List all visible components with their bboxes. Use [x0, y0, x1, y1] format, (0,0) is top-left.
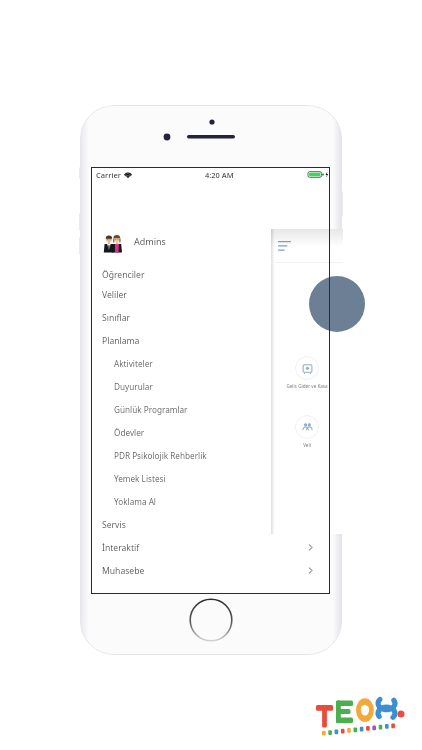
button[interactable]: İnteraktif — [91, 536, 330, 559]
other: Home — [189, 598, 233, 642]
button[interactable]: Duyurular — [91, 375, 330, 398]
staticText: 4:20 AM — [205, 170, 234, 180]
staticText: PDR Psikolojik Rehberlik — [114, 450, 207, 461]
button[interactable]: Gelir, Gider ve Kasa — [271, 356, 343, 389]
staticText: Admins — [134, 235, 166, 247]
button[interactable]: Admins — [91, 228, 330, 254]
staticText: Duyurular — [114, 381, 153, 392]
button[interactable]: Aktiviteler — [91, 352, 330, 375]
staticText: Aktiviteler — [114, 358, 153, 369]
staticText: Sınıflar — [102, 312, 131, 324]
staticText: Carrier — [96, 170, 121, 180]
button[interactable]: Muhasebe — [91, 559, 330, 582]
button[interactable]: Servis — [91, 513, 330, 536]
staticText: Yoklama Al — [114, 496, 156, 507]
button[interactable]: Sınıflar — [91, 306, 330, 329]
staticText: Muhasebe — [102, 565, 145, 577]
button[interactable]: Menu — [278, 241, 291, 251]
button[interactable]: PDR Psikolojik Rehberlik — [91, 444, 330, 467]
staticText: Planlama — [102, 335, 140, 347]
button[interactable]: Öğrenciler — [91, 266, 330, 283]
button[interactable]: Ödevler — [91, 421, 330, 444]
staticText: Gelir, Gider ve Kasa — [271, 383, 343, 389]
button[interactable]: TEOS Android and iOS — [310, 686, 410, 742]
button[interactable]: Günlük Programlar — [91, 398, 330, 421]
button[interactable]: Veli — [271, 415, 343, 448]
staticText: Veli — [271, 442, 343, 448]
button[interactable]: Yoklama Al — [91, 490, 330, 513]
staticText: Veliler — [102, 289, 127, 301]
staticText: Servis — [102, 519, 126, 531]
staticText: İnteraktif — [102, 542, 140, 554]
button[interactable]: Yemek Listesi — [91, 467, 330, 490]
staticText: Öğrenciler — [102, 269, 145, 281]
button[interactable]: Veliler — [91, 283, 330, 306]
staticText: Ödevler — [114, 427, 145, 438]
button[interactable]: Planlama — [91, 329, 330, 352]
staticText: Yemek Listesi — [114, 473, 166, 484]
staticText: Günlük Programlar — [114, 404, 188, 415]
